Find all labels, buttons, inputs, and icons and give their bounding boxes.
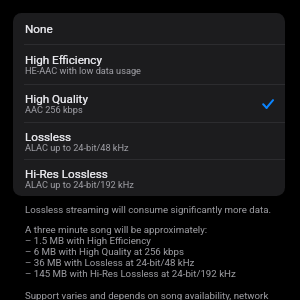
staticText: Lossless streaming will consume signific… [25, 204, 272, 215]
staticText: High Efficiency [25, 53, 102, 67]
staticText: Support varies and depends on song avail… [25, 290, 269, 300]
button[interactable]: None [13, 13, 285, 45]
button[interactable]: High Efficiency [13, 45, 285, 85]
staticText: HE-AAC with low data usage [25, 65, 141, 76]
button[interactable]: Hi-Res Lossless [13, 160, 285, 196]
staticText: ALAC up to 24-bit/48 kHz [25, 142, 129, 153]
staticText: Hi-Res Lossless [25, 167, 108, 181]
staticText: High Quality [25, 92, 88, 106]
staticText: A three minute song will be approximatel… [25, 224, 236, 279]
staticText: Lossless [25, 130, 72, 144]
staticText: None [25, 22, 53, 36]
other: Selected [262, 98, 274, 110]
button[interactable]: Lossless [13, 123, 285, 160]
staticText: AAC 256 kbps [25, 104, 83, 115]
button[interactable]: High Quality [13, 85, 285, 123]
staticText: ALAC up to 24-bit/192 kHz [25, 179, 134, 190]
